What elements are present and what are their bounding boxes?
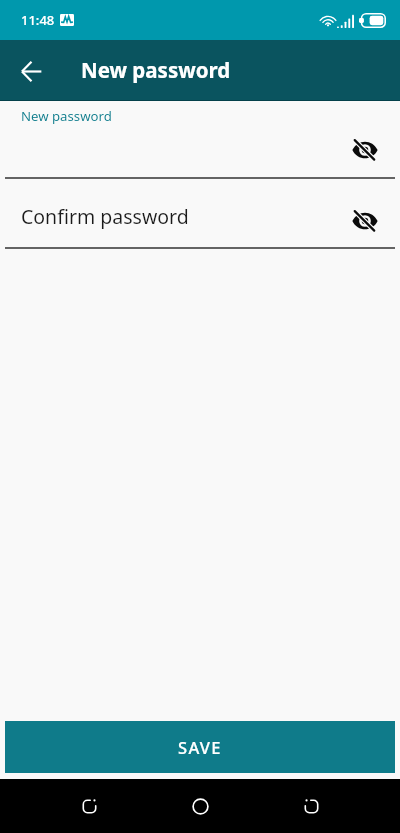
- button[interactable]: Toggle password visibility: [343, 128, 387, 172]
- button[interactable]: Back: [287, 782, 335, 830]
- button[interactable]: Recent apps: [65, 782, 113, 830]
- button[interactable]: Back: [9, 49, 53, 93]
- staticText: New password: [81, 56, 231, 84]
- button[interactable]: Toggle confirm password visibility: [343, 199, 387, 243]
- staticText: 11:48: [21, 11, 55, 29]
- staticText: New password: [21, 107, 112, 125]
- button[interactable]: SAVE: [5, 721, 395, 773]
- button[interactable]: Home: [176, 782, 224, 830]
- staticText: Confirm password: [21, 203, 189, 230]
- staticText: SAVE: [178, 736, 222, 758]
